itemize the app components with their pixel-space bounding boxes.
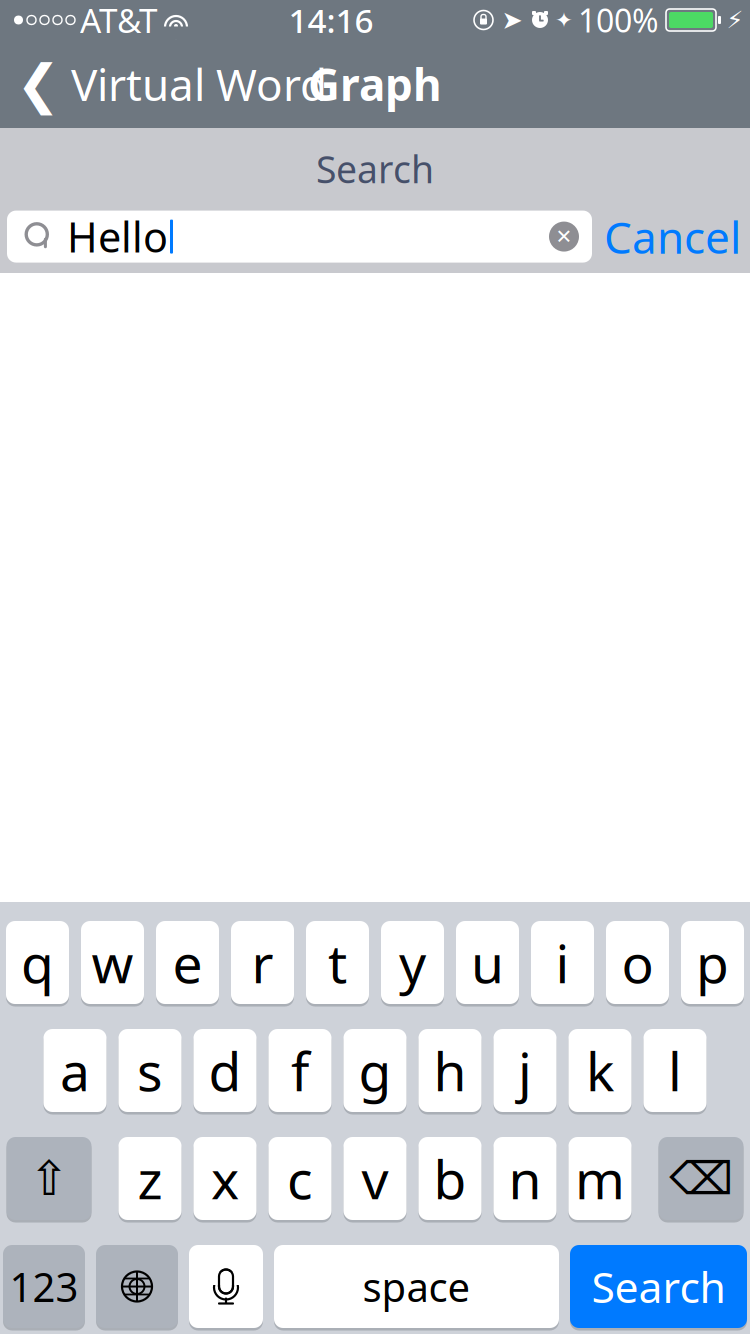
staticText: ⇧: [29, 1151, 69, 1206]
button[interactable]: p: [681, 919, 744, 1005]
staticText: AT&T: [80, 0, 158, 42]
button[interactable]: s: [118, 1027, 181, 1113]
staticText: ⌫: [669, 1153, 733, 1204]
staticText: i: [555, 927, 569, 998]
staticText: t: [328, 927, 347, 998]
button[interactable]: l: [643, 1027, 706, 1113]
staticText: 14:16: [288, 0, 373, 42]
staticText: g: [358, 1035, 391, 1106]
button[interactable]: h: [418, 1027, 481, 1113]
staticText: Virtual Word: [71, 55, 327, 113]
staticText: space: [362, 1260, 470, 1313]
button[interactable]: o: [606, 919, 669, 1005]
staticText: m: [575, 1143, 625, 1214]
button[interactable]: Search: [570, 1243, 747, 1329]
button[interactable]: t: [306, 919, 369, 1005]
button[interactable]: y: [381, 919, 444, 1005]
staticText: q: [21, 927, 54, 998]
staticText: ⚡︎: [726, 6, 743, 34]
staticText: e: [172, 927, 202, 998]
staticText: o: [621, 927, 653, 998]
staticText: r: [251, 927, 273, 998]
button[interactable]: e: [156, 919, 219, 1005]
button[interactable]: 123: [3, 1243, 85, 1329]
staticText: Hello: [67, 209, 168, 264]
button[interactable]: v: [343, 1135, 406, 1221]
staticText: p: [696, 927, 729, 998]
button[interactable]: Cancel: [592, 211, 750, 263]
staticText: 123: [9, 1260, 78, 1313]
button[interactable]: b: [418, 1135, 481, 1221]
staticText: z: [137, 1143, 162, 1214]
staticText: s: [137, 1035, 163, 1106]
staticText: ✦: [555, 8, 573, 32]
button[interactable]: Dictation: [189, 1243, 263, 1329]
button[interactable]: Shift: [6, 1135, 91, 1221]
button[interactable]: g: [343, 1027, 406, 1113]
staticText: w: [91, 927, 133, 998]
button[interactable]: a: [43, 1027, 106, 1113]
staticText: h: [433, 1035, 466, 1106]
button[interactable]: r: [231, 919, 294, 1005]
staticText: Search: [591, 1258, 725, 1315]
button[interactable]: n: [493, 1135, 556, 1221]
button[interactable]: Hello: [7, 211, 592, 263]
staticText: ✕: [555, 225, 572, 248]
staticText: Cancel: [604, 207, 741, 266]
button[interactable]: u: [456, 919, 519, 1005]
button[interactable]: j: [493, 1027, 556, 1113]
button[interactable]: Backspace: [658, 1135, 743, 1221]
button[interactable]: d: [193, 1027, 256, 1113]
staticText: n: [508, 1143, 541, 1214]
button[interactable]: ❮: [0, 40, 327, 128]
button[interactable]: Next keyboard: [96, 1243, 178, 1329]
button[interactable]: z: [118, 1135, 181, 1221]
staticText: ❮: [16, 54, 61, 114]
staticText: f: [291, 1035, 309, 1106]
button[interactable]: q: [6, 919, 69, 1005]
staticText: x: [211, 1143, 239, 1214]
staticText: Graph: [308, 55, 442, 113]
staticText: v: [361, 1143, 388, 1214]
button[interactable]: w: [81, 919, 144, 1005]
staticText: c: [287, 1143, 313, 1214]
staticText: k: [586, 1035, 614, 1106]
button[interactable]: c: [268, 1135, 331, 1221]
staticText: 100%: [578, 0, 659, 41]
staticText: b: [433, 1143, 466, 1214]
staticText: y: [399, 927, 426, 998]
staticText: ➤: [501, 6, 522, 34]
staticText: u: [471, 927, 504, 998]
button[interactable]: i: [531, 919, 594, 1005]
staticText: a: [60, 1035, 90, 1106]
button[interactable]: x: [193, 1135, 256, 1221]
button[interactable]: space: [274, 1243, 559, 1329]
button[interactable]: f: [268, 1027, 331, 1113]
staticText: j: [518, 1035, 532, 1106]
staticText: d: [208, 1035, 241, 1106]
staticText: Search: [316, 144, 434, 194]
button[interactable]: k: [568, 1027, 631, 1113]
button[interactable]: m: [568, 1135, 631, 1221]
staticText: l: [668, 1035, 682, 1106]
